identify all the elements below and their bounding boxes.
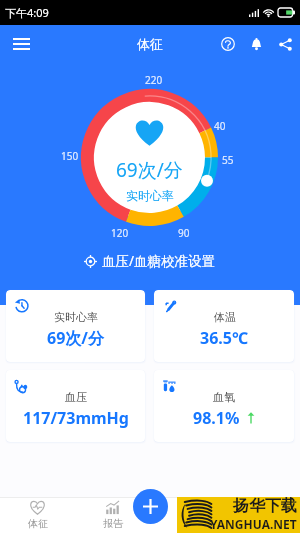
staticText: 36.5℃ [200,327,249,349]
staticText: 实时心率 [54,310,98,324]
button[interactable]: 体征 [0,497,75,533]
staticText: 40 [214,119,226,133]
staticText: YANGHUA.NET [210,516,297,532]
staticText: 体温 [214,310,236,324]
staticText: 血压/血糖校准设置 [102,252,216,270]
staticText: 98.1% [193,407,240,429]
button[interactable]: 血压 [6,370,145,442]
button[interactable]: 血压/血糖校准设置 [80,250,220,272]
staticText: 体征 [137,36,163,52]
staticText: 体征 [28,517,48,530]
button[interactable]: 体温 [154,290,294,362]
staticText: 实时心率 [126,188,174,203]
staticText: 血氧 [213,390,235,404]
staticText: 220 [145,73,163,87]
button[interactable]: Menu [3,26,39,62]
button[interactable]: Share [270,29,300,59]
button[interactable]: 报告 [75,497,150,533]
button[interactable]: Notifications [242,30,270,58]
staticText: 117/73mmHg [23,407,129,429]
staticText: 下午4:09 [5,5,49,20]
staticText: 150 [61,149,79,163]
staticText: 55 [222,153,234,167]
staticText: 120 [111,226,129,240]
button[interactable]: 实时心率 [6,290,145,362]
staticText: 血压 [65,390,87,404]
staticText: 69次/分 [116,157,183,183]
button[interactable]: 血氧 [154,370,294,442]
button[interactable]: Help [214,30,242,58]
staticText: 扬华下载 [233,496,297,516]
staticText: 69次/分 [47,327,104,349]
button[interactable]: Add [133,489,168,524]
staticText: 报告 [103,517,123,530]
staticText: 90 [178,226,190,240]
